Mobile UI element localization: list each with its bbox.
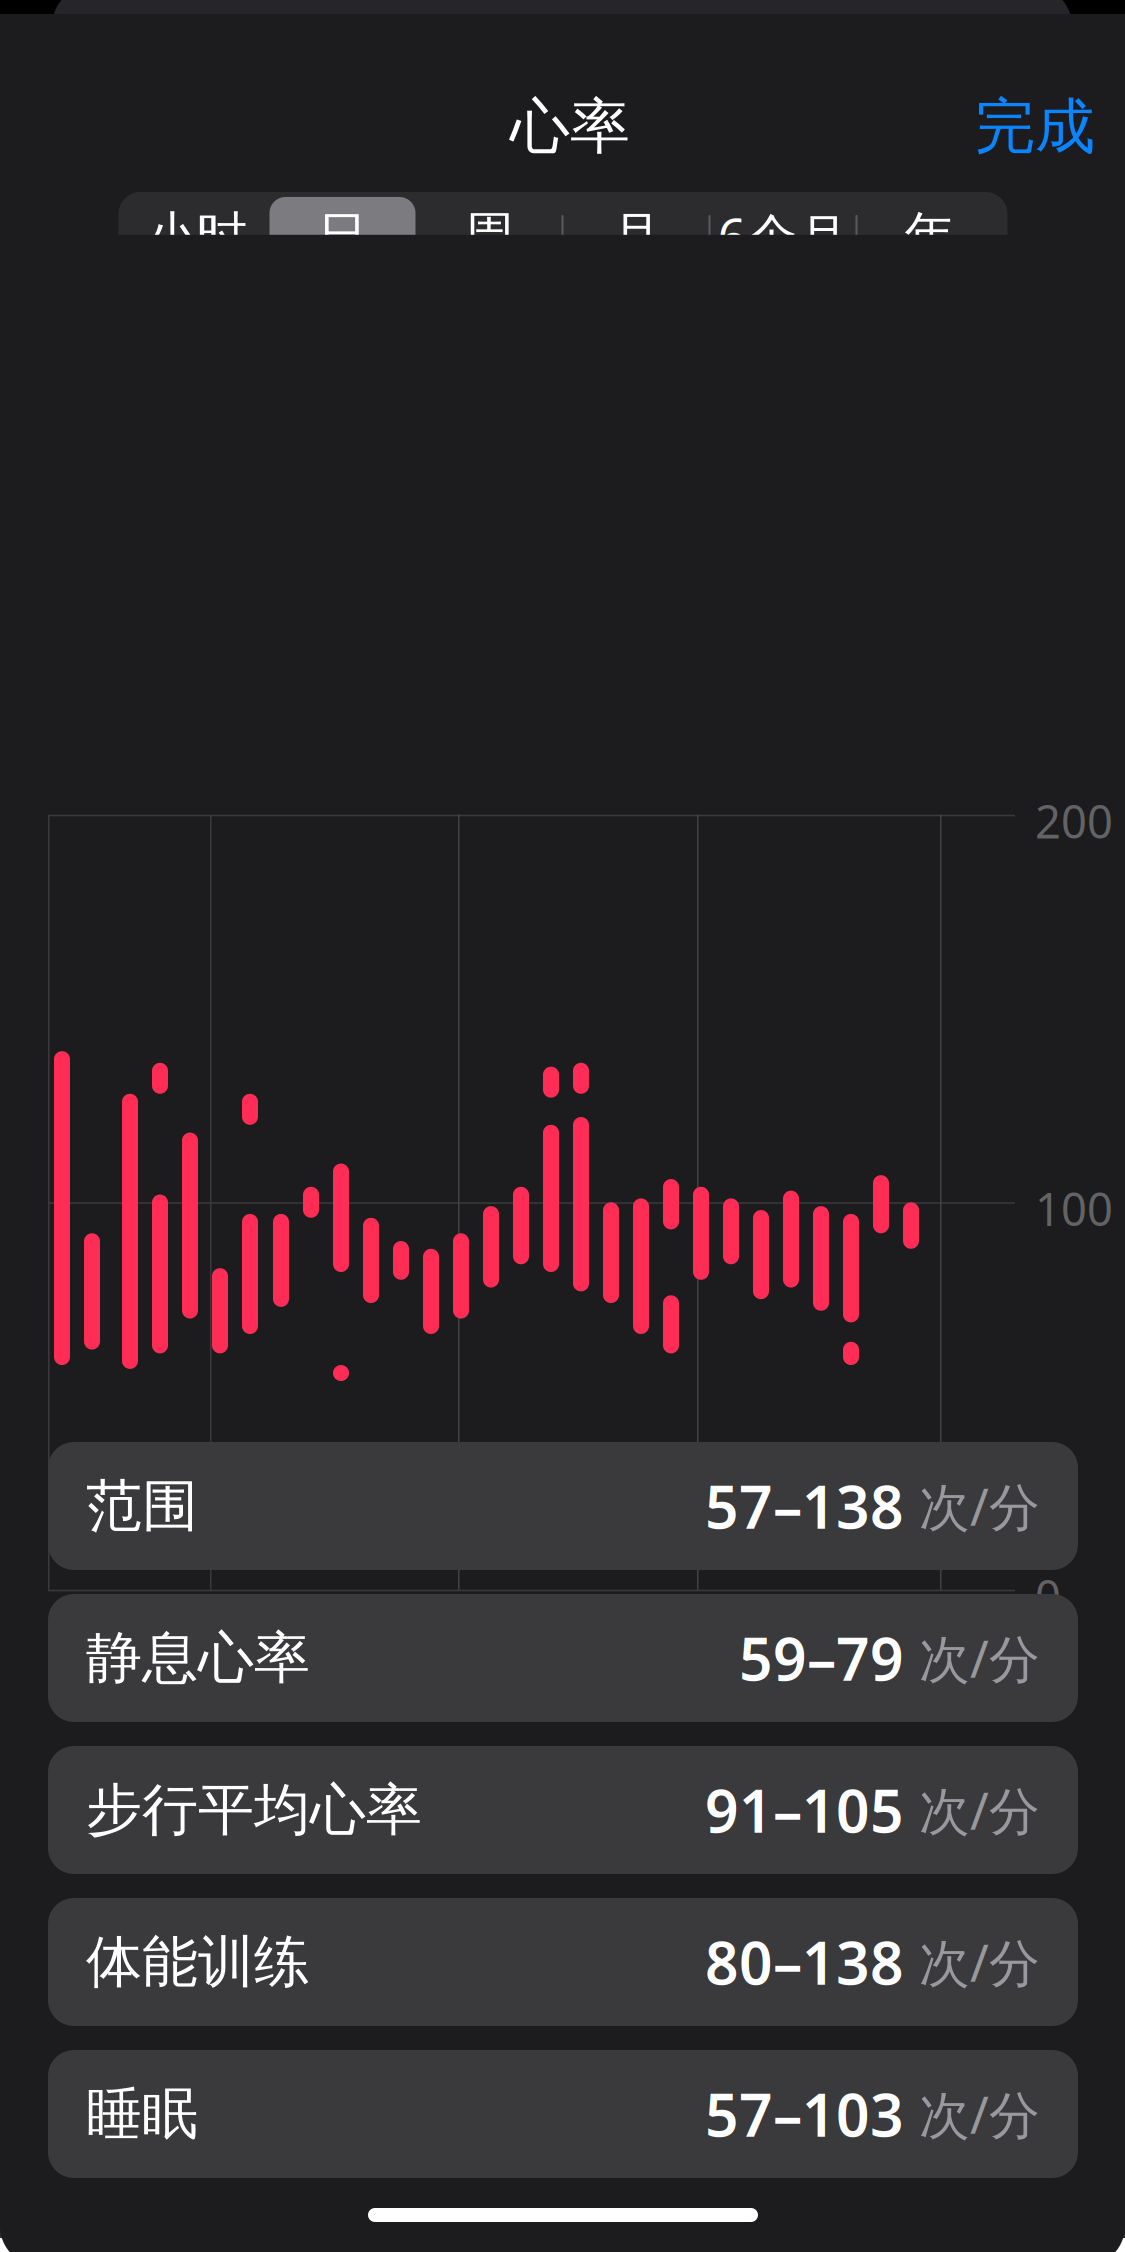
staticText: 完成 [975, 90, 1095, 164]
button[interactable]: 年 [857, 197, 1002, 275]
button[interactable]: 睡眠 [48, 2050, 1078, 2178]
button[interactable]: 6个月 [710, 197, 855, 275]
staticText: 次/分 [904, 1776, 1040, 1844]
staticText: 次/分 [904, 1928, 1040, 1996]
staticText: 0 [1035, 1566, 1061, 1626]
button[interactable]: 步行平均心率 [48, 1746, 1078, 1874]
staticText: 6个月 [717, 202, 848, 270]
button[interactable]: 静息心率 [48, 1594, 1078, 1722]
staticText: 次/分 [904, 2080, 1040, 2148]
staticText: 范围 [86, 1472, 198, 1540]
button[interactable]: 完成 [955, 76, 1115, 178]
staticText: 睡眠 [86, 2080, 198, 2148]
staticText: 周 [463, 205, 514, 267]
staticText: 59–79 [739, 1619, 904, 1697]
staticText: 小时 [145, 205, 247, 267]
button[interactable]: 周 [415, 197, 561, 275]
staticText: 心率 [510, 90, 630, 164]
staticText: 静息心率 [86, 1624, 310, 1692]
staticText: 上午 12 时 [222, 1612, 426, 1670]
button[interactable]: 月 [563, 197, 708, 275]
button[interactable]: 小时 [123, 197, 269, 275]
staticText: 91–105 [705, 1771, 904, 1849]
button[interactable]: 体能训练 [48, 1898, 1078, 2026]
staticText: 体能训练 [86, 1928, 310, 1996]
staticText: 步行平均心率 [86, 1776, 422, 1844]
staticText: 57–138 [705, 1467, 904, 1545]
staticText: 次/分 [904, 1624, 1040, 1692]
staticText: 57–103 [705, 2075, 904, 2153]
staticText: 月 [610, 205, 661, 267]
button[interactable]: 日 [269, 197, 415, 275]
staticText: 日 [317, 205, 368, 267]
staticText: 6 时 [952, 1612, 1032, 1670]
staticText: 80–138 [705, 1923, 904, 2001]
staticText: 200 [1035, 791, 1113, 851]
staticText: 年 [904, 205, 955, 267]
staticText: 100 [1035, 1178, 1113, 1238]
staticText: 下午 12 时 [709, 1612, 913, 1670]
button[interactable]: 范围 [48, 1442, 1078, 1570]
staticText: 次/分 [904, 1472, 1040, 1540]
